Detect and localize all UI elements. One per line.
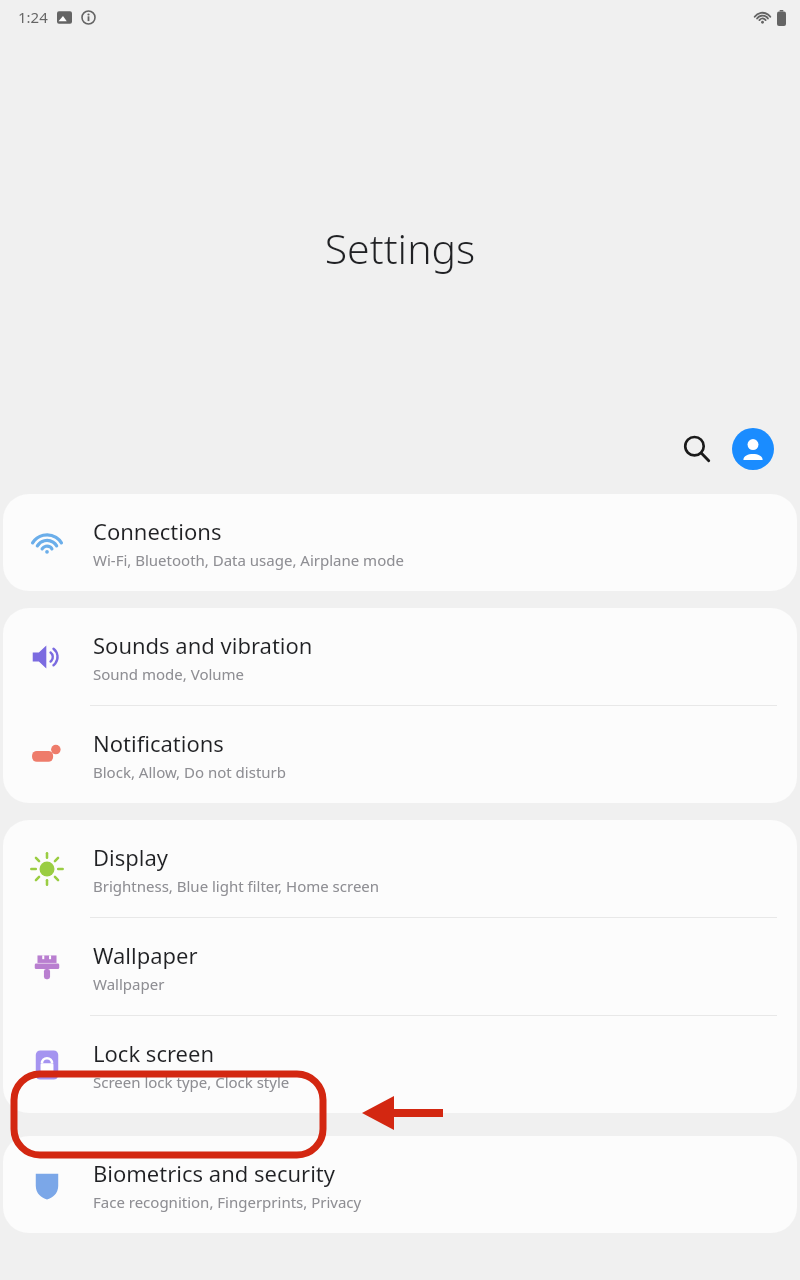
staticText: Screen lock type, Clock style <box>93 1072 290 1092</box>
staticText: Wallpaper <box>93 940 198 970</box>
button[interactable]: Notifications <box>3 706 797 803</box>
staticText: Wallpaper <box>93 974 165 994</box>
staticText: Lock screen <box>93 1038 215 1068</box>
button[interactable]: Biometrics and security <box>3 1136 797 1233</box>
staticText: Notifications <box>93 728 224 758</box>
staticText: Display <box>93 842 169 872</box>
button[interactable]: Connections <box>3 494 797 591</box>
staticText: Face recognition, Fingerprints, Privacy <box>93 1192 362 1212</box>
staticText: Connections <box>93 516 222 546</box>
staticText: Settings <box>0 220 800 276</box>
button[interactable]: Sounds and vibration <box>3 608 797 705</box>
button[interactable]: Display <box>3 820 797 917</box>
button[interactable]: Wallpaper <box>3 918 797 1015</box>
staticText: Wi-Fi, Bluetooth, Data usage, Airplane m… <box>93 550 404 570</box>
button[interactable]: Lock screen <box>3 1016 797 1113</box>
staticText: 1:24 <box>18 7 48 27</box>
staticText: Block, Allow, Do not disturb <box>93 762 287 782</box>
button[interactable]: Search <box>674 426 720 472</box>
button[interactable]: Account <box>732 428 774 470</box>
staticText: Sounds and vibration <box>93 630 313 660</box>
staticText: Sound mode, Volume <box>93 664 245 684</box>
staticText: Brightness, Blue light filter, Home scre… <box>93 876 380 896</box>
staticText: Biometrics and security <box>93 1158 336 1188</box>
